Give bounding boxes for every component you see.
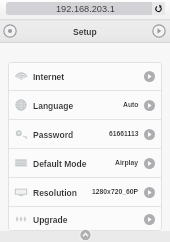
button[interactable]: Resolution	[8, 178, 162, 206]
button[interactable]: Upgrade	[8, 207, 162, 231]
staticText: 192.168.203.1	[56, 4, 115, 14]
staticText: Password	[33, 130, 74, 139]
button[interactable]: Back	[3, 24, 17, 38]
staticText: Setup	[73, 27, 97, 36]
button[interactable]: Default Mode	[8, 149, 162, 177]
button[interactable]: Password	[8, 120, 162, 148]
button[interactable]: Scroll to top	[79, 229, 92, 241]
staticText: Internet	[33, 72, 65, 81]
staticText: Auto	[123, 101, 139, 109]
button[interactable]: Forward	[152, 24, 166, 38]
staticText: Language	[33, 101, 74, 110]
staticText: Resolution	[33, 188, 77, 197]
button[interactable]: 192.168.203.1	[6, 2, 165, 15]
staticText: 1280x720_60P	[92, 188, 139, 196]
button[interactable]: Language	[8, 91, 162, 119]
button[interactable]: Internet	[8, 62, 162, 90]
staticText: Default Mode	[33, 159, 87, 168]
button[interactable]: Reload	[152, 2, 165, 15]
staticText: 61661113	[109, 130, 139, 138]
staticText: Upgrade	[33, 215, 68, 224]
staticText: Airplay	[115, 159, 139, 167]
